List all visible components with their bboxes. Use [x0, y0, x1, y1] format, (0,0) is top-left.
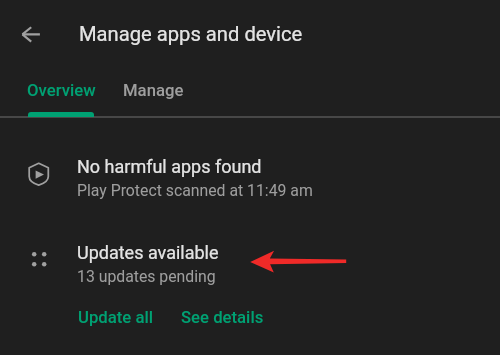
staticText: See details: [181, 308, 264, 328]
button[interactable]: No harmful apps found: [0, 146, 500, 202]
button[interactable]: Manage: [112, 70, 194, 116]
staticText: Update all: [78, 308, 153, 328]
button[interactable]: Navigate up: [14, 17, 48, 51]
staticText: Overview: [27, 81, 96, 101]
button[interactable]: See details: [169, 302, 276, 334]
button[interactable]: Update all: [66, 302, 165, 334]
staticText: Play Protect scanned at 11:49 am: [77, 181, 313, 200]
button[interactable]: Updates available: [0, 232, 500, 288]
button[interactable]: Overview: [10, 70, 112, 116]
staticText: Manage apps and device: [79, 22, 303, 46]
staticText: No harmful apps found: [77, 156, 262, 177]
staticText: Updates available: [77, 242, 219, 263]
staticText: Manage: [123, 81, 184, 101]
staticText: 13 updates pending: [77, 267, 216, 286]
